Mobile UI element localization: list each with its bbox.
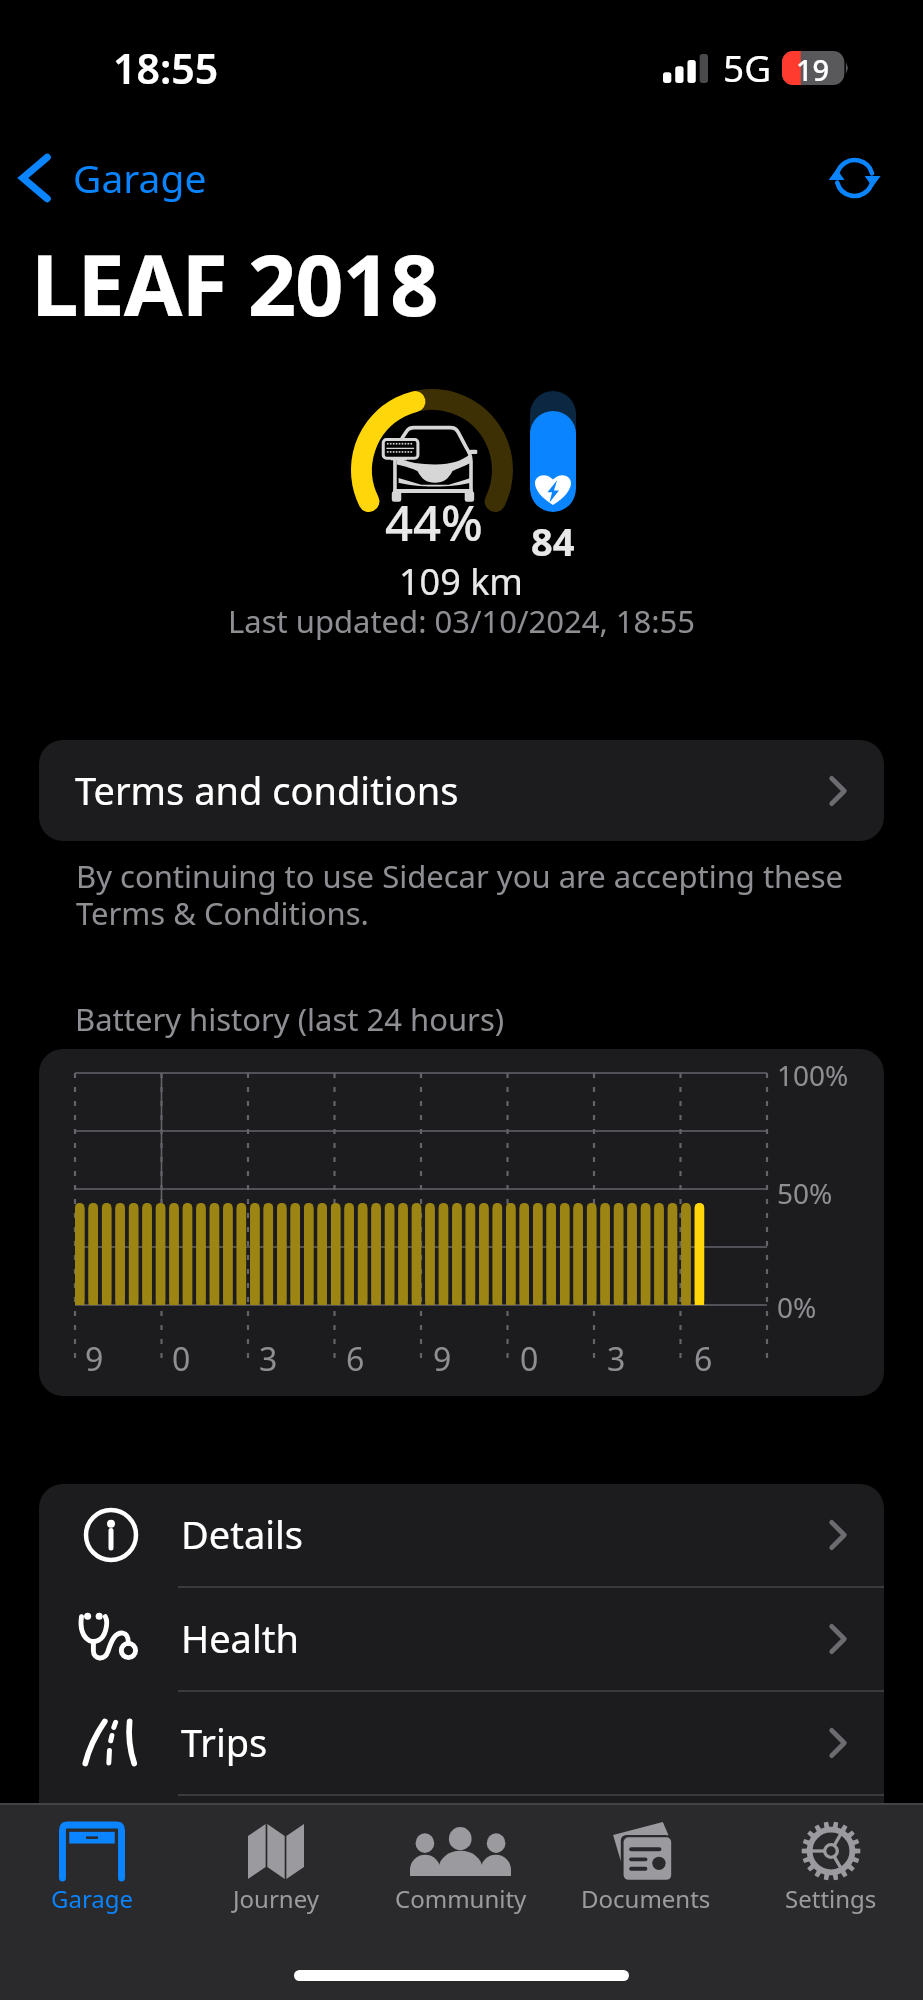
staticText: Garage: [51, 1882, 134, 1915]
staticText: Trips: [181, 1716, 268, 1768]
button[interactable]: Terms and conditions: [39, 740, 884, 841]
staticText: Last updated: 03/10/2024, 18:55: [228, 600, 696, 642]
staticText: Community: [395, 1882, 527, 1915]
staticText: Battery history (last 24 hours): [75, 998, 505, 1040]
staticText: 3: [607, 1337, 626, 1381]
staticText: 9: [85, 1337, 104, 1381]
button[interactable]: Health: [39, 1588, 884, 1690]
staticText: 9: [433, 1337, 452, 1381]
staticText: 5G: [723, 42, 772, 92]
button[interactable]: Details: [39, 1484, 884, 1586]
button[interactable]: Journey: [184, 1805, 368, 1939]
staticText: Charging: [181, 1820, 346, 1872]
button[interactable]: Trips: [39, 1692, 884, 1794]
button[interactable]: Garage: [4, 140, 223, 216]
button[interactable]: Community: [368, 1805, 553, 1939]
staticText: Garage: [73, 151, 207, 204]
staticText: 109 km: [399, 557, 524, 606]
staticText: 3: [259, 1337, 278, 1381]
staticText: 6: [346, 1337, 365, 1381]
button[interactable]: Documents: [553, 1805, 738, 1939]
staticText: 100%: [777, 1056, 849, 1094]
staticText: Journey: [233, 1882, 319, 1915]
staticText: By continuing to use Sidecar you are acc…: [76, 855, 866, 935]
staticText: 44%: [385, 489, 483, 556]
staticText: Terms and conditions: [75, 764, 459, 816]
staticText: 18:55: [113, 40, 219, 96]
staticText: Health: [181, 1612, 299, 1664]
staticText: 0: [172, 1337, 191, 1381]
staticText: Documents: [581, 1882, 711, 1915]
staticText: LEAF 2018: [31, 225, 438, 341]
staticText: 84: [531, 515, 575, 567]
staticText: 6: [694, 1337, 713, 1381]
staticText: Settings: [785, 1882, 877, 1915]
button[interactable]: Garage: [0, 1805, 184, 1939]
staticText: 0: [520, 1337, 539, 1381]
staticText: Details: [181, 1508, 304, 1560]
staticText: 50%: [777, 1174, 833, 1212]
button[interactable]: Settings: [738, 1805, 923, 1939]
button[interactable]: Refresh: [807, 138, 901, 218]
staticText: 19: [796, 50, 830, 84]
staticText: 0%: [777, 1288, 817, 1326]
button[interactable]: Charging: [39, 1796, 884, 1898]
